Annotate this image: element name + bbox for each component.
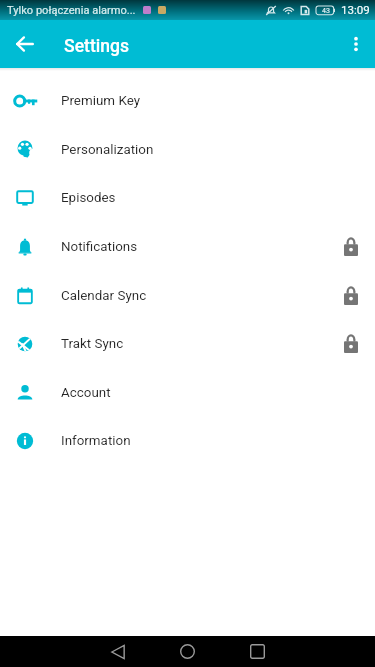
staticText: Premium Key xyxy=(61,93,140,109)
button[interactable]: Home xyxy=(159,636,215,667)
button[interactable]: Episodes xyxy=(0,173,375,222)
staticText: 43 xyxy=(322,7,330,15)
staticText: Episodes xyxy=(61,190,116,206)
staticText: Calendar Sync xyxy=(61,288,147,304)
button[interactable]: Trakt Sync xyxy=(0,319,375,368)
button[interactable]: Account xyxy=(0,368,375,417)
button[interactable]: Back xyxy=(13,32,37,56)
button[interactable]: Back xyxy=(90,636,146,667)
staticText: Settings xyxy=(64,36,130,57)
button[interactable]: Recent apps xyxy=(229,636,285,667)
staticText: 13:09 xyxy=(341,3,370,17)
button[interactable]: Premium Key xyxy=(0,76,375,125)
button[interactable]: Information xyxy=(0,416,375,465)
button[interactable]: Calendar Sync xyxy=(0,271,375,320)
staticText: Account xyxy=(61,385,111,401)
staticText: Personalization xyxy=(61,142,154,158)
staticText: Trakt Sync xyxy=(61,336,124,352)
staticText: Information xyxy=(61,433,131,449)
button[interactable]: Notifications xyxy=(0,222,375,271)
button[interactable]: More options xyxy=(344,32,368,56)
staticText: Notifications xyxy=(61,239,138,255)
staticText: Tylko połączenia alarmo... xyxy=(7,4,136,17)
button[interactable]: Personalization xyxy=(0,125,375,174)
